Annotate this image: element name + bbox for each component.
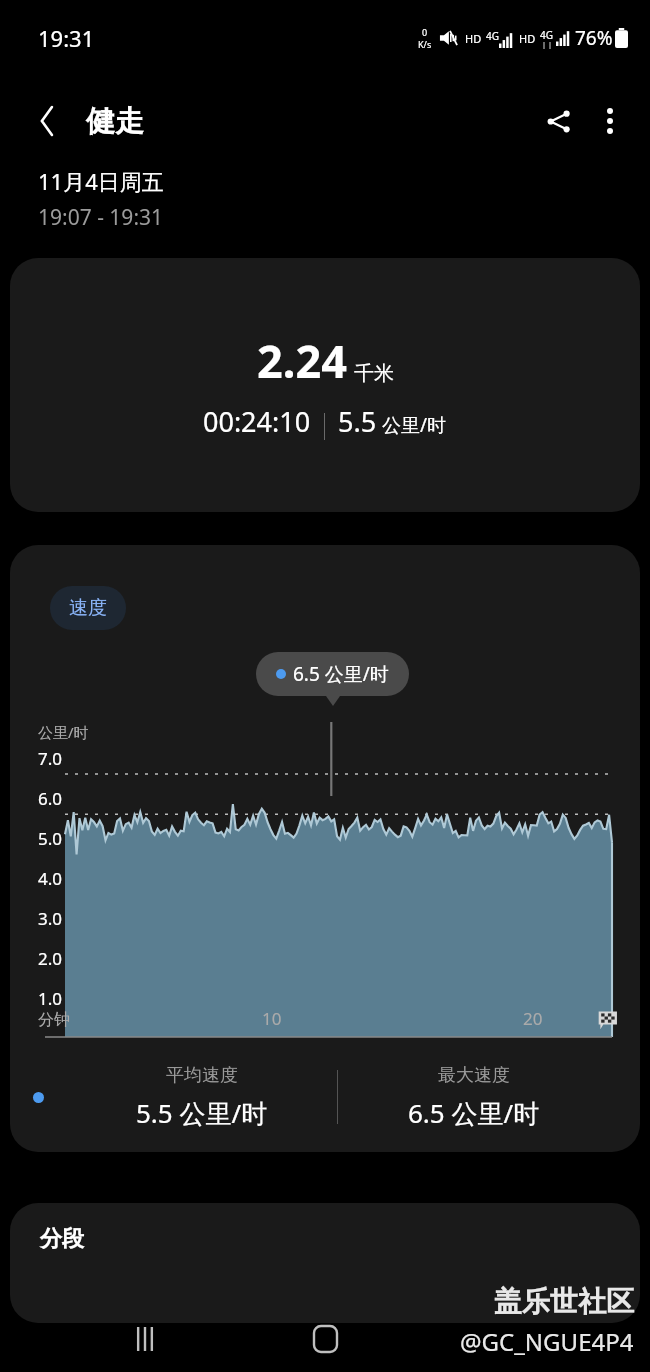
staticText: 20 — [523, 1007, 543, 1030]
staticText: 10 — [262, 1007, 282, 1030]
staticText: 6.0 — [38, 787, 63, 810]
staticText: 盖乐世社区 — [494, 1284, 634, 1319]
staticText: 4G — [486, 29, 499, 43]
staticText: 4G — [540, 28, 553, 42]
staticText: 7.0 — [38, 747, 63, 770]
staticText: 5.0 — [38, 827, 63, 850]
staticText: 分段 — [40, 1225, 84, 1253]
staticText: 千米 — [354, 361, 394, 386]
staticText: 健走 — [86, 103, 144, 140]
staticText: 19:31 — [38, 23, 95, 53]
staticText: 6.5 公里/时 — [293, 661, 389, 687]
staticText: 公里/时 — [38, 722, 89, 742]
staticText: 5.5 公里/时 — [136, 1095, 268, 1131]
staticText: 平均速度 — [166, 1064, 238, 1087]
button[interactable]: More options — [584, 95, 636, 147]
staticText: 分钟 — [38, 1010, 70, 1030]
staticText: HD — [519, 31, 536, 46]
staticText: 19:07 - 19:31 — [38, 203, 164, 232]
staticText: K/s — [418, 38, 432, 50]
staticText: 00:24:10 — [203, 403, 311, 440]
button[interactable]: 2.24 — [10, 258, 640, 512]
staticText: 速度 — [69, 596, 107, 620]
staticText: 最大速度 — [438, 1064, 510, 1087]
staticText: 76% — [575, 25, 613, 51]
button[interactable]: 速度 — [50, 586, 126, 630]
button[interactable]: Recents — [120, 1314, 170, 1364]
staticText: 11月4日周五 — [38, 166, 164, 196]
button[interactable]: Share — [532, 95, 584, 147]
staticText: HD — [465, 31, 482, 46]
button[interactable]: Home — [300, 1314, 350, 1364]
button[interactable]: 分段 — [10, 1203, 640, 1323]
staticText: 3.0 — [38, 907, 63, 930]
staticText: 5.5 — [338, 403, 377, 440]
staticText: 1.0 — [38, 987, 63, 1010]
button[interactable]: Back — [24, 97, 72, 145]
staticText: 0 — [422, 26, 428, 38]
staticText: @GC_NGUE4P4 — [460, 1325, 634, 1358]
staticText: 2.0 — [38, 947, 63, 970]
staticText: 2.24 — [257, 330, 347, 391]
staticText: 6.5 公里/时 — [408, 1095, 540, 1131]
staticText: 公里/时 — [382, 412, 447, 438]
staticText: 4.0 — [38, 867, 63, 890]
